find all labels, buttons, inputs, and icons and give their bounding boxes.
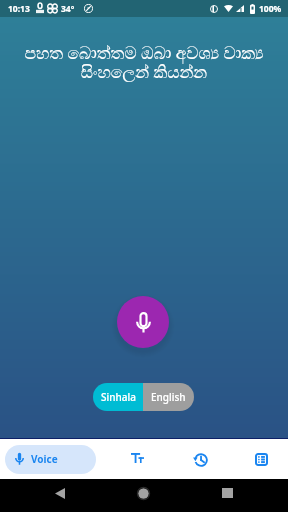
staticText: English <box>151 390 186 404</box>
button[interactable]: Voice <box>5 445 96 474</box>
staticText: පහත බොත්තම ඔබා අවශ්‍ය වාක්‍ය සිංහලෙන් කි… <box>0 41 288 83</box>
button[interactable]: Back <box>44 477 76 509</box>
staticText: 10:13 <box>8 3 30 15</box>
button[interactable]: Speak <box>117 296 169 348</box>
staticText: Voice <box>31 452 58 466</box>
button[interactable]: List <box>245 442 277 476</box>
button[interactable]: History <box>184 443 216 477</box>
button[interactable]: Text size <box>121 441 153 475</box>
button[interactable]: Sinhala <box>93 383 143 411</box>
button[interactable]: Home <box>127 477 159 509</box>
staticText: Sinhala <box>101 390 136 404</box>
staticText: 34° <box>61 3 75 15</box>
staticText: 100% <box>259 3 282 15</box>
button[interactable]: English <box>143 383 194 411</box>
button[interactable]: Recents <box>211 477 243 509</box>
